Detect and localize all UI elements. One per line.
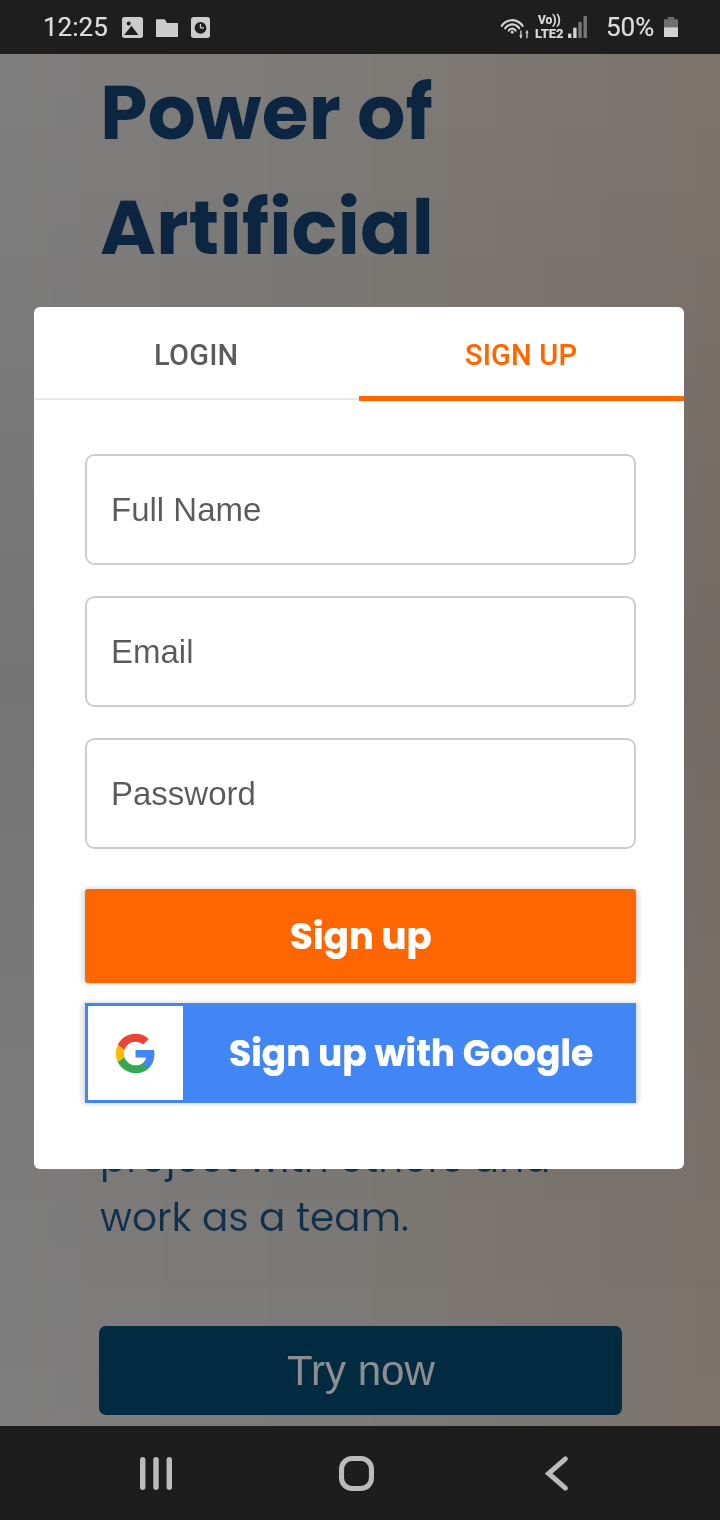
staticText: Power of Artificial bbox=[100, 55, 435, 285]
button[interactable]: Email bbox=[85, 596, 636, 707]
button[interactable]: Sign up bbox=[85, 889, 636, 983]
staticText: Sign up with Google bbox=[229, 1028, 594, 1078]
staticText: Email bbox=[111, 633, 194, 670]
button[interactable]: SIGN UP bbox=[359, 307, 684, 402]
button[interactable]: Password bbox=[85, 738, 636, 849]
staticText: Password bbox=[111, 775, 256, 812]
button[interactable]: Try now bbox=[99, 1326, 622, 1415]
staticText: Full Name bbox=[111, 491, 262, 528]
button[interactable]: Home bbox=[316, 1426, 396, 1520]
staticText: Try now bbox=[287, 1347, 435, 1394]
button[interactable]: Back bbox=[517, 1426, 597, 1520]
button[interactable]: Sign up with Google bbox=[85, 1003, 636, 1103]
staticText: SIGN UP bbox=[465, 338, 578, 372]
staticText: Vo)) bbox=[538, 14, 561, 27]
staticText: 12:25 bbox=[43, 12, 108, 42]
staticText: Sign up bbox=[290, 910, 432, 962]
staticText: LTE2 bbox=[535, 27, 564, 41]
button[interactable]: Full Name bbox=[85, 454, 636, 565]
staticText: project with others and work as a team. bbox=[100, 1129, 551, 1247]
button[interactable]: LOGIN bbox=[34, 307, 359, 402]
staticText: LOGIN bbox=[154, 338, 239, 372]
staticText: 50% bbox=[606, 12, 655, 42]
button[interactable]: Recent apps bbox=[116, 1426, 196, 1520]
